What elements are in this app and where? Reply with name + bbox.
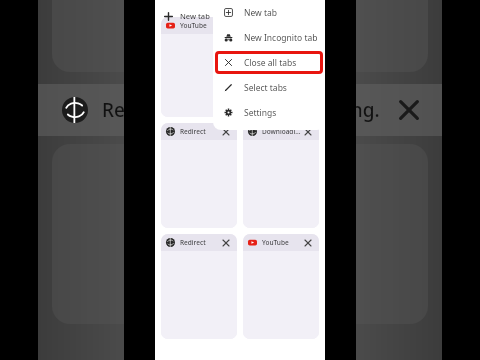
button[interactable]: New tab <box>159 6 214 26</box>
button[interactable]: Close tab Redirect <box>219 125 232 138</box>
button[interactable]: Close tab <box>243 17 319 117</box>
button[interactable]: New Incognito tab <box>213 25 325 50</box>
staticText: ading. <box>323 97 380 123</box>
button[interactable]: Close tab Redirect <box>219 236 232 249</box>
button[interactable]: YouTube <box>161 17 237 117</box>
button[interactable]: YouTube <box>243 234 319 339</box>
button[interactable]: Close tab Downloading <box>301 125 314 138</box>
button[interactable]: Close all tabs <box>213 50 325 75</box>
staticText: YouTube <box>180 21 219 30</box>
staticText: Downloading <box>262 127 301 136</box>
staticText: New Incognito tab <box>244 32 318 44</box>
button[interactable]: Close tab YouTube <box>301 236 314 249</box>
staticText: Select tabs <box>244 82 287 94</box>
button[interactable]: Downloading <box>243 123 319 228</box>
staticText: New tab <box>244 7 278 19</box>
staticText: Settings <box>244 107 277 119</box>
staticText: Redire <box>102 97 161 123</box>
button[interactable]: Settings <box>213 100 325 125</box>
button[interactable]: Select tabs <box>213 75 325 100</box>
button[interactable]: Redirect <box>161 234 237 339</box>
staticText: Redirect <box>180 127 219 136</box>
button[interactable]: Redirect <box>161 123 237 228</box>
staticText: New tab <box>180 11 210 21</box>
button[interactable]: New tab <box>213 0 325 25</box>
staticText: YouTube <box>262 238 301 247</box>
staticText: Redirect <box>180 238 219 247</box>
staticText: Close all tabs <box>244 57 297 69</box>
